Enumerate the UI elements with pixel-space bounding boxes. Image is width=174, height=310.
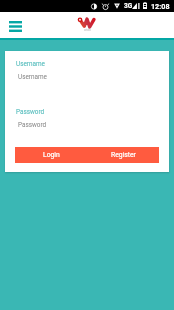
staticText: wido bbox=[84, 28, 91, 32]
staticText: Username bbox=[18, 73, 47, 81]
staticText: Register bbox=[111, 151, 136, 159]
button[interactable]: Login bbox=[15, 147, 87, 163]
button[interactable]: Register bbox=[87, 147, 159, 163]
staticText: Username bbox=[16, 60, 45, 68]
staticText: Password bbox=[18, 121, 47, 129]
staticText: 3G bbox=[124, 2, 133, 10]
staticText: 12:08 bbox=[151, 2, 170, 10]
staticText: Login bbox=[43, 151, 60, 159]
staticText: Password bbox=[16, 108, 45, 116]
button[interactable]: Open navigation menu bbox=[4, 15, 27, 38]
